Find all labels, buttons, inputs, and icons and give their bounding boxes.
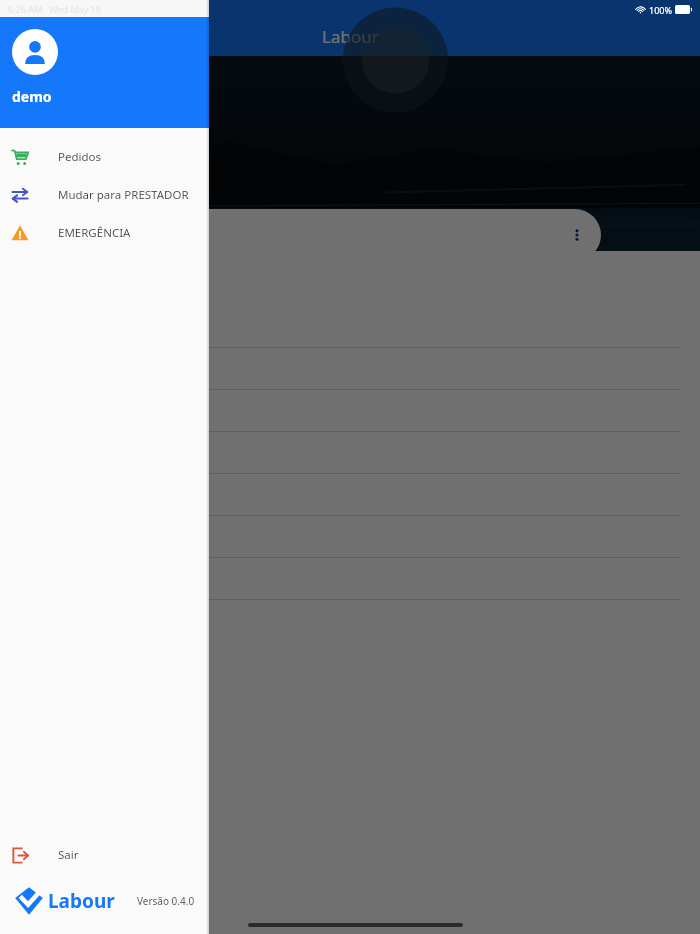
button[interactable] <box>0 348 700 390</box>
staticText: EMERGÊNCIA <box>58 225 131 241</box>
button[interactable]: More options <box>561 219 593 251</box>
button[interactable]: More options <box>0 209 601 261</box>
button[interactable]: Mudar para PRESTADOR <box>0 176 209 214</box>
button[interactable] <box>0 432 700 474</box>
button[interactable] <box>0 390 700 432</box>
button[interactable]: Pedidos <box>0 138 209 176</box>
button[interactable] <box>0 558 700 600</box>
staticText: Labour <box>322 25 379 48</box>
button[interactable] <box>0 0 700 934</box>
button[interactable] <box>0 516 700 558</box>
button[interactable]: demo <box>0 17 209 128</box>
staticText: Labour <box>48 888 115 914</box>
staticText: 6:26 AM Wed May 19 <box>8 3 101 15</box>
staticText: Mudar para PRESTADOR <box>58 187 189 203</box>
staticText: Pedidos <box>58 149 102 165</box>
button[interactable] <box>0 306 700 348</box>
button[interactable] <box>0 474 700 516</box>
staticText: Versão 0.4.0 <box>137 894 195 908</box>
staticText: 100% <box>649 4 672 16</box>
button[interactable]: EMERGÊNCIA <box>0 214 209 252</box>
staticText: demo <box>12 87 52 106</box>
staticText: Sair <box>58 847 79 863</box>
button[interactable]: Sair <box>0 836 209 874</box>
